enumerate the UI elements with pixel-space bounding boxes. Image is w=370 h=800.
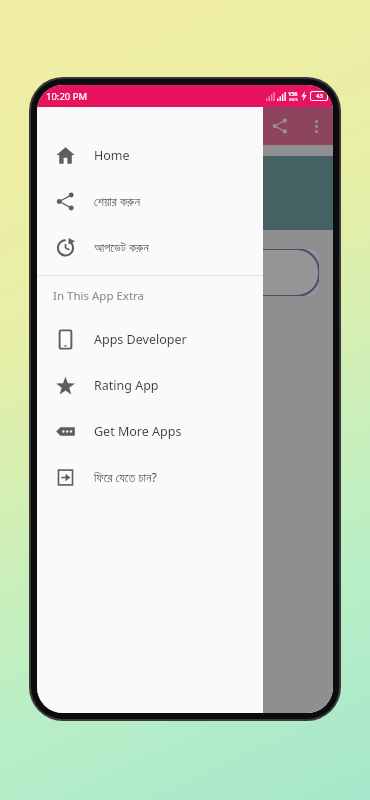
- staticText: 43: [316, 92, 323, 100]
- staticText: শেয়ার করুন: [94, 193, 140, 210]
- staticText: 156: [288, 90, 298, 97]
- button[interactable]: Get More Apps: [37, 408, 263, 454]
- button[interactable]: শেয়ার করুন: [37, 178, 263, 224]
- button[interactable]: আপডেট করুন: [37, 224, 263, 270]
- button[interactable]: Apps Developer: [37, 316, 263, 362]
- button[interactable]: শুরু করুন: [51, 249, 319, 296]
- staticText: ফিরে যেতে চান?: [94, 469, 157, 486]
- staticText: মুফতী আল্লামা হাকীম মাশরাফ আমরহী: [134, 195, 237, 207]
- staticText: Apps Developer: [94, 331, 187, 348]
- staticText: KB/S: [289, 97, 298, 102]
- button[interactable]: Rating App: [37, 362, 263, 408]
- staticText: 10:20 PM: [46, 90, 88, 103]
- staticText: Get More Apps: [94, 423, 182, 440]
- button[interactable]: ফিরে যেতে চান?: [37, 454, 263, 500]
- staticText: In This App Extra: [53, 288, 145, 304]
- staticText: শুরু করুন: [164, 263, 206, 282]
- staticText: Home: [94, 147, 130, 164]
- button[interactable]: More options: [299, 109, 333, 143]
- button[interactable]: Share: [261, 107, 299, 145]
- staticText: Rating App: [94, 377, 159, 394]
- button[interactable]: Home: [37, 132, 263, 178]
- staticText: আপডেট করুন: [94, 239, 149, 256]
